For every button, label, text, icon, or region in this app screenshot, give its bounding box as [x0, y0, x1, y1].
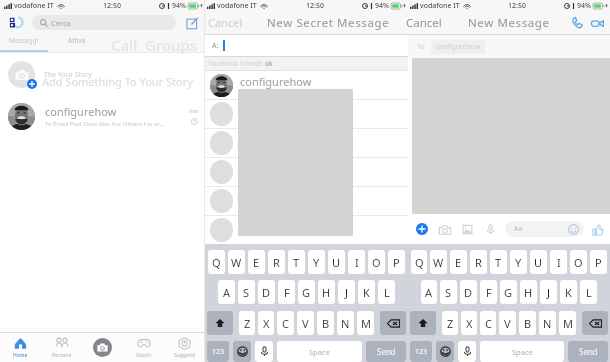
- button[interactable]: H: [318, 280, 335, 304]
- button[interactable]: D: [460, 280, 477, 304]
- button[interactable]: B: [519, 311, 536, 335]
- button[interactable]: Camera: [82, 333, 123, 362]
- button[interactable]: N: [539, 311, 556, 335]
- button[interactable]: [205, 129, 408, 157]
- button[interactable]: Home: [0, 333, 41, 362]
- button[interactable]: S: [238, 280, 255, 304]
- button[interactable]: T: [288, 250, 305, 274]
- button[interactable]: Space: [480, 341, 564, 362]
- button[interactable]: Y: [308, 250, 325, 274]
- button[interactable]: K: [560, 280, 577, 304]
- button[interactable]: U: [530, 250, 547, 274]
- button[interactable]: [205, 187, 408, 215]
- button[interactable]: R: [268, 250, 285, 274]
- staticText: 94%: [172, 1, 186, 11]
- button[interactable]: Persone: [41, 333, 82, 362]
- button[interactable]: N: [337, 311, 354, 335]
- button[interactable]: U: [328, 250, 345, 274]
- button[interactable]: New message: [185, 16, 198, 29]
- button[interactable]: The Your Story: [0, 53, 205, 96]
- button[interactable]: Backspace: [582, 311, 608, 335]
- button[interactable]: P: [590, 250, 607, 274]
- button[interactable]: M: [559, 311, 576, 335]
- button[interactable]: Backspace: [380, 311, 406, 335]
- button[interactable]: Cerca: [32, 15, 176, 30]
- button[interactable]: E: [450, 250, 467, 274]
- button[interactable]: V: [297, 311, 314, 335]
- button[interactable]: Y: [510, 250, 527, 274]
- button[interactable]: A: [421, 280, 437, 304]
- button[interactable]: B: [317, 311, 334, 335]
- button[interactable]: Z: [442, 311, 458, 335]
- button[interactable]: Cancel: [406, 15, 442, 31]
- button[interactable]: Emoji: [233, 341, 251, 362]
- button[interactable]: Like: [591, 223, 604, 236]
- button[interactable]: [205, 216, 408, 244]
- button[interactable]: Emoji: [436, 341, 454, 362]
- button[interactable]: G: [500, 280, 517, 304]
- button[interactable]: T: [490, 250, 507, 274]
- button[interactable]: D: [258, 280, 275, 304]
- button[interactable]: 123: [410, 341, 432, 362]
- button[interactable]: A: [218, 280, 235, 304]
- staticText: vodafone IT: [14, 1, 54, 11]
- button[interactable]: J: [338, 280, 355, 304]
- button[interactable]: G: [298, 280, 315, 304]
- button[interactable]: Profile: [7, 14, 24, 31]
- button[interactable]: Q: [208, 250, 225, 274]
- button[interactable]: L: [580, 280, 597, 304]
- button[interactable]: R: [470, 250, 487, 274]
- button[interactable]: Dictation: [458, 341, 476, 362]
- button[interactable]: Photos: [461, 223, 474, 236]
- button[interactable]: F: [480, 280, 497, 304]
- button[interactable]: Cancel: [208, 15, 243, 30]
- button[interactable]: C: [480, 311, 496, 335]
- button[interactable]: Shift: [410, 311, 436, 335]
- button[interactable]: Attiva: [48, 33, 106, 52]
- button[interactable]: O: [368, 250, 385, 274]
- button[interactable]: H: [520, 280, 537, 304]
- button[interactable]: Send: [568, 341, 608, 362]
- button[interactable]: F: [278, 280, 295, 304]
- staticText: O: [574, 255, 583, 270]
- button[interactable]: Suggeriti: [164, 333, 205, 362]
- button[interactable]: Send: [366, 341, 406, 362]
- button[interactable]: [205, 100, 408, 128]
- button[interactable]: Voice message: [484, 223, 497, 236]
- staticText: F: [284, 285, 290, 300]
- button[interactable]: Q: [411, 250, 427, 274]
- button[interactable]: Giochi: [123, 333, 164, 362]
- button[interactable]: O: [570, 250, 587, 274]
- button[interactable]: K: [358, 280, 375, 304]
- staticText: To Email Past Data Also For Others For s…: [45, 120, 165, 128]
- button[interactable]: I: [550, 250, 567, 274]
- button[interactable]: [205, 71, 408, 99]
- button[interactable]: Messaggi: [0, 33, 48, 52]
- button[interactable]: Z: [239, 311, 255, 335]
- button[interactable]: Space: [277, 341, 362, 362]
- button[interactable]: Aa: [505, 221, 584, 237]
- button[interactable]: 123: [207, 341, 229, 362]
- button[interactable]: C: [277, 311, 294, 335]
- button[interactable]: X: [258, 311, 274, 335]
- button[interactable]: W: [430, 250, 447, 274]
- button[interactable]: V: [499, 311, 516, 335]
- button[interactable]: [205, 158, 408, 186]
- button[interactable]: More: [416, 223, 428, 235]
- button[interactable]: I: [348, 250, 365, 274]
- button[interactable]: X: [461, 311, 477, 335]
- button[interactable]: J: [540, 280, 557, 304]
- staticText: U: [332, 255, 341, 270]
- button[interactable]: Video call: [590, 16, 604, 30]
- button[interactable]: W: [228, 250, 245, 274]
- button[interactable]: configurehow: [0, 96, 205, 136]
- button[interactable]: E: [248, 250, 265, 274]
- button[interactable]: Dictation: [255, 341, 273, 362]
- button[interactable]: Camera: [438, 223, 451, 236]
- button[interactable]: M: [357, 311, 374, 335]
- button[interactable]: L: [378, 280, 395, 304]
- button[interactable]: Call: [570, 16, 584, 30]
- button[interactable]: P: [388, 250, 405, 274]
- button[interactable]: Shift: [207, 311, 233, 335]
- button[interactable]: S: [440, 280, 457, 304]
